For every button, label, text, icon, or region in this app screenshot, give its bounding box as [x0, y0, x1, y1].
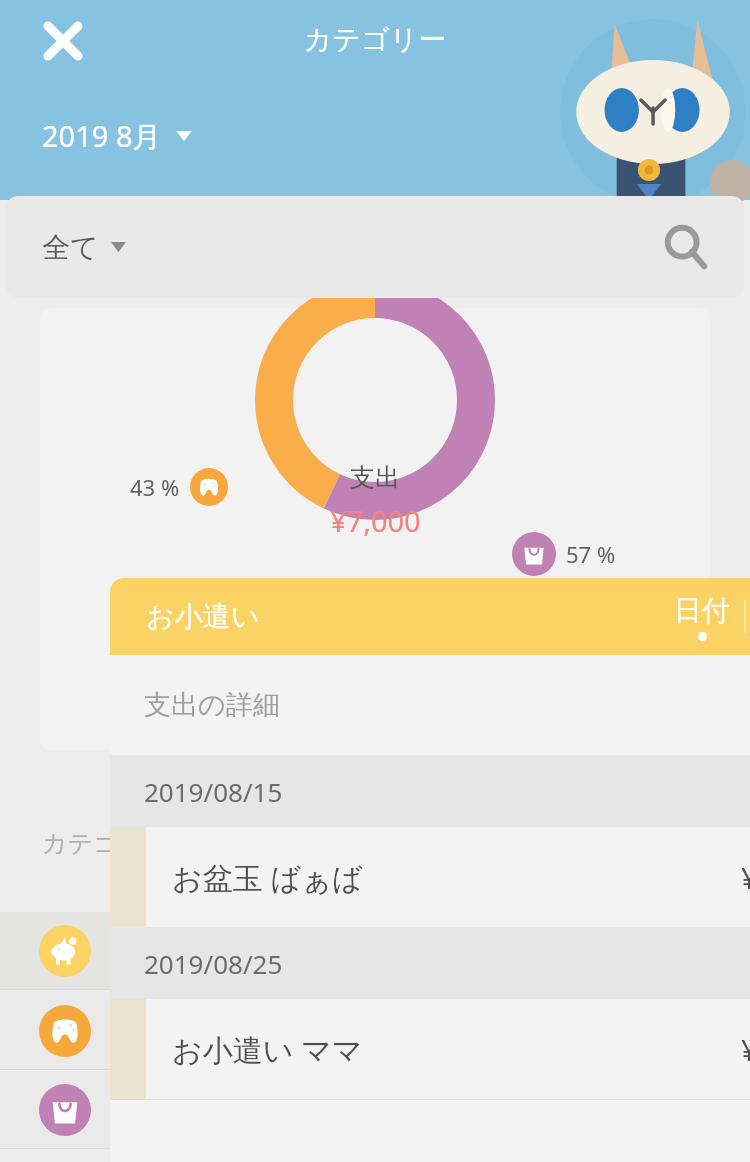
button[interactable]: 日付 [660, 593, 744, 641]
staticText: ¥2,000 [741, 1030, 750, 1069]
staticText: ¥7,000 [330, 501, 421, 540]
staticText: 57 % [566, 539, 616, 569]
staticText: 2019/08/15 [144, 774, 283, 809]
button[interactable]: Search [662, 223, 710, 271]
staticText: カテゴリー [0, 22, 750, 57]
button[interactable]: Close [38, 16, 88, 66]
button[interactable] [0, 992, 750, 1070]
button[interactable]: 2019 8月 [42, 116, 192, 156]
staticText: 支出の詳細 [144, 688, 280, 722]
staticText: お小遣い ママ [172, 1029, 363, 1070]
staticText: 支出 [350, 462, 400, 493]
button[interactable]: お盆玉 ばぁば [110, 827, 750, 927]
staticText: お小遣い [146, 599, 260, 634]
button[interactable]: 2019/08/15 [110, 755, 750, 827]
staticText: ¥5,000 [741, 858, 750, 897]
button[interactable]: 全て [42, 196, 126, 298]
staticText: カテゴリー [42, 828, 170, 859]
staticText: 2019 8月 [42, 116, 162, 156]
button[interactable] [0, 1071, 750, 1149]
button[interactable] [0, 912, 750, 990]
staticText: 日付 [674, 593, 730, 628]
staticText: 2019/08/25 [144, 946, 283, 981]
button[interactable]: 2019/08/25 [110, 927, 750, 999]
staticText: お盆玉 ばぁば [172, 857, 363, 898]
staticText: 43 % [130, 472, 180, 502]
staticText: 全て [42, 230, 99, 265]
button[interactable]: お小遣い ママ [110, 999, 750, 1099]
